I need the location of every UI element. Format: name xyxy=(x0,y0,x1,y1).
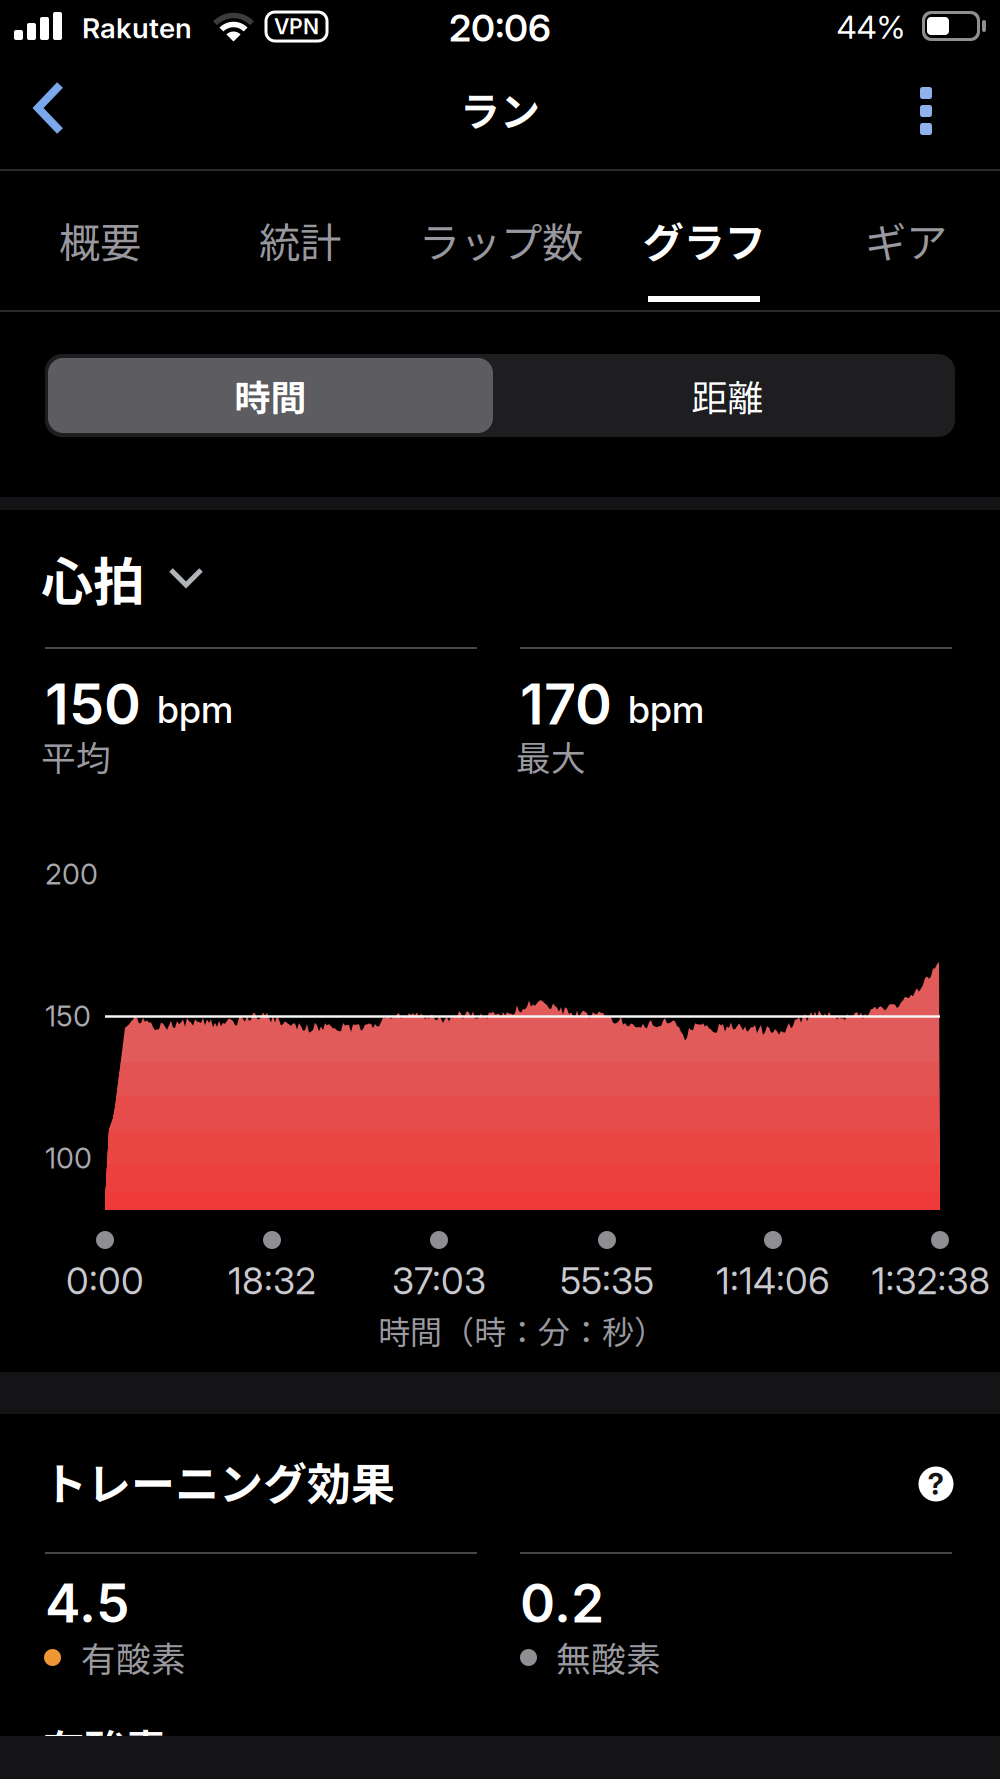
button[interactable]: About Training Effect xyxy=(906,1454,966,1514)
staticText: 0.2 xyxy=(520,1571,604,1635)
staticText: 距離 xyxy=(691,369,763,421)
staticText: ラップ数 xyxy=(419,210,583,270)
button[interactable]: 距離 xyxy=(505,358,950,433)
staticText: グラフ xyxy=(642,210,765,270)
staticText: 100 xyxy=(45,1141,92,1175)
button[interactable]: グラフ xyxy=(604,180,804,300)
staticText: 150 xyxy=(45,999,91,1033)
staticText: 4.5 xyxy=(45,1571,130,1635)
button[interactable]: 概要 xyxy=(0,180,200,300)
button[interactable]: ギア xyxy=(806,180,1000,300)
staticText: 44% xyxy=(836,8,905,46)
staticText: 無酸素 xyxy=(556,1632,661,1682)
staticText: 時間 xyxy=(234,369,306,421)
staticText: 37:03 xyxy=(392,1259,486,1303)
button[interactable]: More xyxy=(896,69,956,153)
staticText: Rakuten xyxy=(82,11,192,45)
staticText: bpm xyxy=(628,687,704,732)
staticText: 0:00 xyxy=(66,1259,144,1303)
button[interactable]: 心拍 xyxy=(41,543,301,613)
staticText: 150 xyxy=(45,670,141,738)
staticText: 平均 xyxy=(41,731,111,781)
staticText: 1:32:38 xyxy=(871,1259,990,1303)
staticText: 心拍 xyxy=(41,540,145,616)
button[interactable]: 統計 xyxy=(200,180,400,300)
staticText: 170 xyxy=(520,670,612,738)
staticText: 概要 xyxy=(59,210,141,270)
button[interactable]: Back xyxy=(17,66,87,150)
staticText: VPN xyxy=(274,14,319,39)
staticText: ギア xyxy=(865,210,947,270)
staticText: 20:06 xyxy=(449,5,551,51)
staticText: ? xyxy=(927,1466,944,1502)
staticText: 1:14:06 xyxy=(716,1259,830,1303)
staticText: 統計 xyxy=(259,210,341,270)
button[interactable]: ラップ数 xyxy=(401,180,601,300)
staticText: bpm xyxy=(157,687,233,732)
staticText: ラン xyxy=(460,80,540,138)
staticText: 最大 xyxy=(516,731,586,781)
staticText: 有酸素 xyxy=(43,1717,166,1777)
button[interactable]: 時間 xyxy=(48,358,493,433)
staticText: 55:35 xyxy=(560,1259,654,1303)
staticText: トレーニング効果 xyxy=(43,1449,395,1513)
staticText: 有酸素 xyxy=(81,1632,186,1682)
staticText: 200 xyxy=(45,857,98,891)
staticText: 18:32 xyxy=(228,1259,316,1303)
staticText: 時間（時：分：秒） xyxy=(378,1307,666,1353)
